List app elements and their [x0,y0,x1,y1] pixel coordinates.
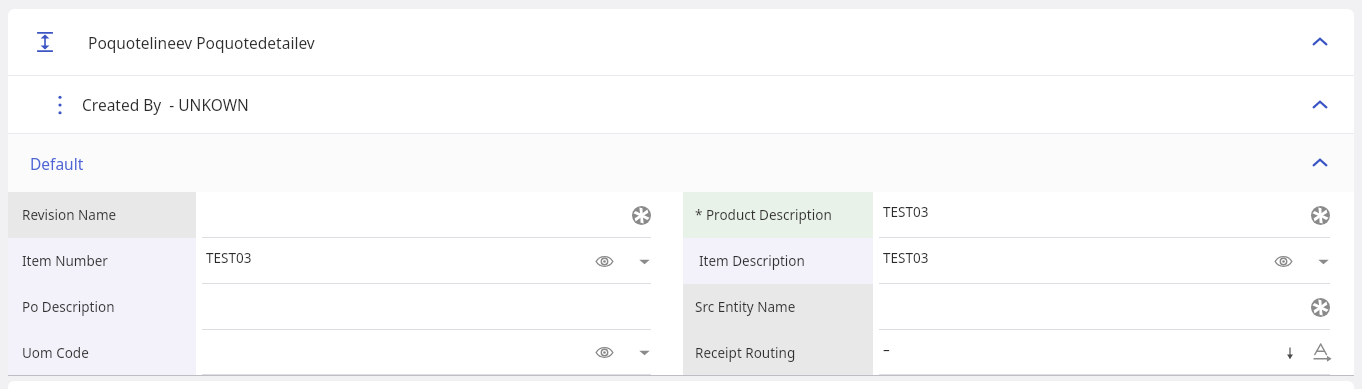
button[interactable]: Collapse section [1310,153,1330,173]
staticText: Item Number [22,252,108,270]
button[interactable]: Item Number [8,238,675,284]
staticText: Receipt Routing [695,344,796,362]
button[interactable]: Open list [1317,255,1330,268]
button[interactable]: Pick value [632,206,651,225]
button[interactable]: Line height [8,9,1354,75]
button[interactable]: Show details [595,343,614,362]
button[interactable]: Item Description [683,238,1354,284]
staticText: Created By - UNKOWN [82,94,249,115]
button[interactable]: Receipt Routing [683,330,1354,375]
staticText: * Product Description [695,206,832,224]
button[interactable]: Default [8,134,1354,192]
staticText: Item Description [699,252,805,270]
button[interactable]: Line height [34,30,56,54]
button[interactable]: Pick value [1311,206,1330,225]
button[interactable]: Collapse section [1310,32,1330,52]
button[interactable]: More options [54,92,66,118]
staticText: Src Entity Name [695,298,796,316]
staticText: TEST03 [206,249,252,267]
staticText: Po Description [22,298,115,316]
staticText: Default [30,153,84,174]
staticText: Uom Code [22,344,89,362]
button[interactable]: More options [8,76,1354,133]
staticText: Poquotelineev Poquotedetailev [88,32,315,53]
button[interactable]: * Product Description [683,192,1354,238]
button[interactable]: Uom Code [8,330,675,375]
staticText: – [883,341,890,359]
button[interactable]: Po Description [8,284,675,330]
button[interactable]: Translate [1311,342,1332,363]
button[interactable]: Select [1283,345,1297,361]
staticText: Revision Name [22,206,117,224]
button[interactable]: Open list [638,346,651,359]
button[interactable]: Open list [638,255,651,268]
button[interactable]: Show details [1274,252,1293,271]
button[interactable]: Collapse section [1310,95,1330,115]
button[interactable]: Src Entity Name [683,284,1354,330]
button[interactable]: Revision Name [8,192,675,238]
button[interactable]: Pick value [1311,298,1330,317]
staticText: TEST03 [883,249,929,267]
staticText: TEST03 [883,203,929,221]
button[interactable]: Show details [595,252,614,271]
